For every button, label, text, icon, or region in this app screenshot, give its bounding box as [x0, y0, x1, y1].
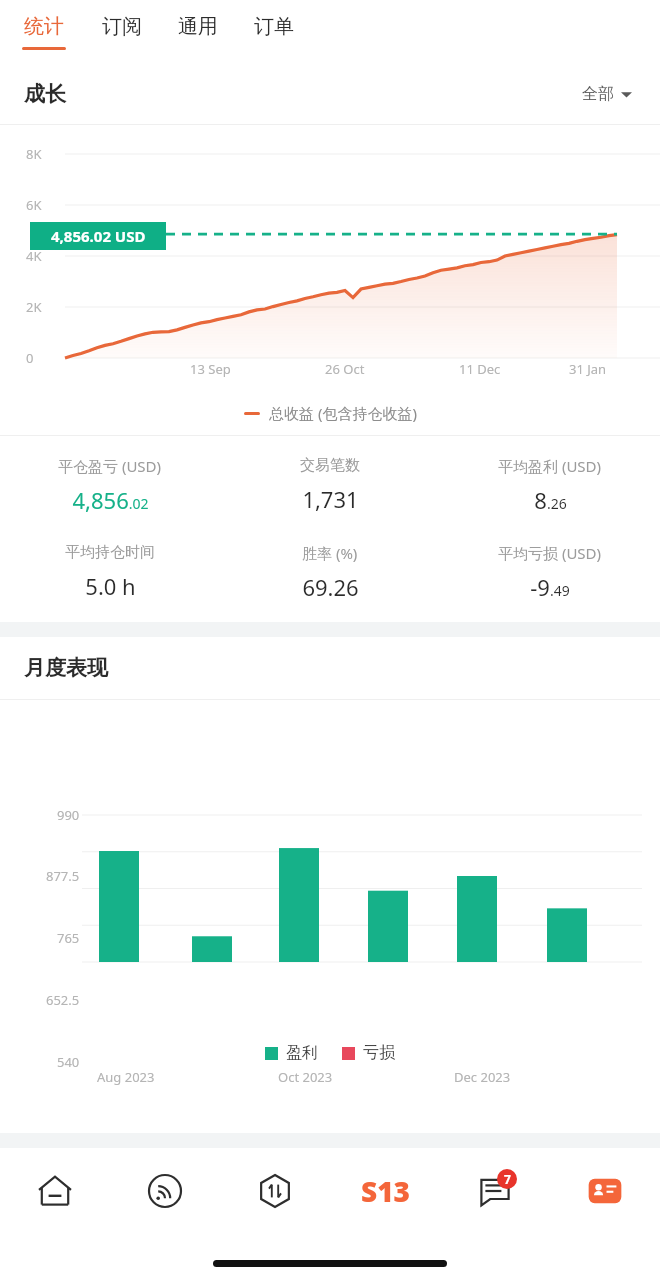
staticText: 4K	[26, 247, 42, 265]
staticText: 成长	[24, 81, 66, 107]
staticText: 平均盈利 (USD)	[498, 456, 602, 476]
staticText: 7	[504, 1171, 511, 1187]
staticText: 平均亏损 (USD)	[498, 543, 602, 563]
staticText: 990	[57, 806, 80, 824]
staticText: 5.0 h	[85, 571, 136, 601]
staticText: 通用	[178, 14, 218, 39]
staticText: 订阅	[102, 14, 142, 39]
staticText: 1,731	[302, 484, 359, 514]
staticText: 平仓盈亏 (USD)	[58, 456, 162, 476]
staticText: 8.26	[534, 485, 567, 515]
staticText: 8K	[26, 145, 42, 163]
button[interactable]: S13	[330, 1148, 440, 1234]
button[interactable]: 平均盈利 (USD)	[440, 454, 660, 517]
staticText: 26 Oct	[325, 360, 365, 378]
button[interactable]: Trade	[220, 1148, 330, 1234]
staticText: 月度表现	[24, 655, 108, 681]
staticText: 胜率 (%)	[302, 543, 358, 563]
staticText: 877.5	[46, 867, 80, 885]
button[interactable]: 胜率 (%)	[220, 541, 440, 604]
button[interactable]: 统计	[18, 0, 70, 50]
button[interactable]: 4,856.02 USD	[30, 222, 166, 250]
button[interactable]: 平均亏损 (USD)	[440, 541, 660, 604]
button[interactable]: 平仓盈亏 (USD)	[0, 454, 220, 517]
staticText: 订单	[254, 14, 294, 39]
staticText: 765	[57, 929, 80, 947]
staticText: Dec 2023	[454, 1068, 511, 1086]
staticText: 总收益 (包含持仓收益)	[269, 403, 417, 423]
staticText: 652.5	[46, 991, 80, 1009]
staticText: 6K	[26, 196, 42, 214]
button[interactable]: Profile	[550, 1148, 660, 1234]
staticText: 亏损	[363, 1043, 395, 1063]
button[interactable]: 订阅	[98, 0, 146, 47]
staticText: -9.49	[530, 572, 570, 602]
button[interactable]: Signals	[110, 1148, 220, 1234]
staticText: 全部	[582, 84, 614, 104]
staticText: 2K	[26, 298, 42, 316]
staticText: 统计	[24, 14, 64, 39]
button[interactable]: 订单	[250, 0, 298, 47]
button[interactable]: 平均持仓时间	[0, 541, 220, 603]
button[interactable]: 交易笔数	[220, 454, 440, 516]
staticText: 4,856.02	[72, 485, 149, 515]
staticText: S13	[361, 1172, 410, 1210]
staticText: 11 Dec	[459, 360, 501, 378]
staticText: 540	[57, 1053, 80, 1071]
staticText: 平均持仓时间	[65, 543, 155, 562]
button[interactable]: Home	[0, 1148, 110, 1234]
staticText: 盈利	[286, 1043, 318, 1063]
staticText: 13 Sep	[190, 360, 231, 378]
staticText: Aug 2023	[97, 1068, 155, 1086]
button[interactable]: Messages	[440, 1148, 550, 1234]
staticText: 交易笔数	[300, 456, 360, 475]
button[interactable]: 通用	[174, 0, 222, 47]
staticText: Oct 2023	[278, 1068, 333, 1086]
staticText: 0	[26, 349, 34, 367]
staticText: 69.26	[302, 572, 359, 602]
staticText: 31 Jan	[569, 360, 607, 378]
staticText: 4,856.02 USD	[51, 226, 146, 246]
button[interactable]: 全部	[578, 80, 636, 108]
